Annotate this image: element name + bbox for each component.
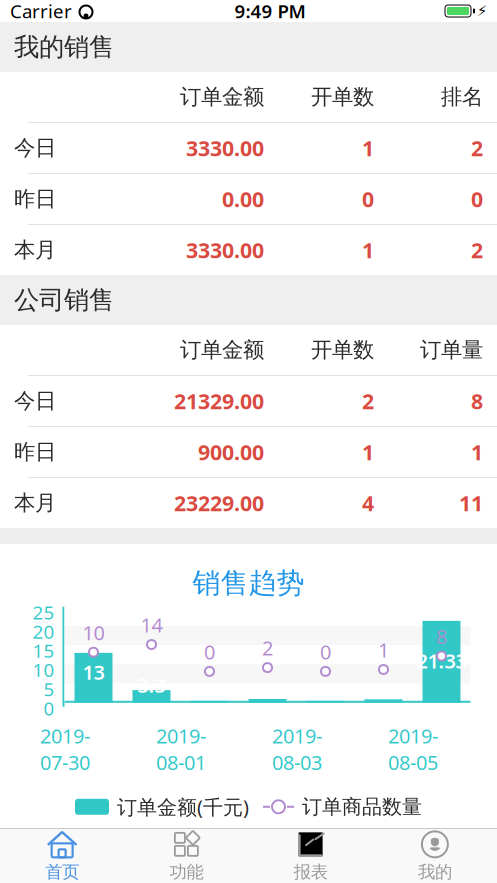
button[interactable]: 首页: [0, 829, 124, 883]
staticText: 今日: [14, 135, 56, 161]
staticText: 9:49 PM: [234, 0, 305, 23]
staticText: Carrier: [10, 0, 72, 23]
staticText: 开单数: [311, 337, 374, 363]
staticText: 8: [471, 387, 483, 415]
button[interactable]: 我的: [373, 829, 497, 883]
staticText: 订单量: [420, 337, 483, 363]
staticText: 1: [362, 438, 374, 466]
staticText: 2: [471, 134, 483, 162]
staticText: 2019-07-30: [40, 722, 90, 775]
staticText: 10: [32, 657, 54, 682]
staticText: 本月: [14, 490, 56, 516]
staticText: 今日: [14, 388, 56, 414]
button[interactable]: 报表: [248, 829, 373, 883]
staticText: 8: [436, 623, 447, 650]
staticText: 11: [459, 489, 483, 517]
staticText: 21329.00: [174, 387, 264, 415]
staticText: 0: [204, 638, 215, 665]
staticText: 21.33: [416, 648, 466, 674]
staticText: 2: [471, 236, 483, 264]
staticText: 3330.00: [186, 134, 264, 162]
staticText: 2019-08-05: [388, 722, 438, 775]
staticText: 1: [378, 636, 389, 663]
staticText: 我的: [418, 861, 452, 883]
staticText: 排名: [441, 84, 483, 110]
staticText: 2019-08-03: [272, 722, 322, 775]
staticText: 0: [43, 696, 54, 721]
staticText: 销售趋势: [192, 566, 304, 600]
staticText: 我的销售: [14, 31, 114, 62]
staticText: 报表: [294, 861, 328, 883]
staticText: 1: [362, 236, 374, 264]
staticText: 0.00: [222, 185, 264, 213]
staticText: 订单金额: [180, 337, 264, 363]
staticText: 3.3: [137, 672, 165, 698]
staticText: 0: [471, 185, 483, 213]
staticText: 20: [32, 619, 54, 644]
staticText: ⚡︎: [477, 3, 487, 19]
staticText: 2019-08-01: [156, 722, 206, 775]
staticText: 功能: [169, 861, 203, 883]
staticText: 4: [362, 489, 374, 517]
button[interactable]: 功能: [124, 829, 248, 883]
staticText: 5: [43, 677, 54, 701]
staticText: 订单金额(千元): [117, 793, 249, 820]
staticText: 1: [471, 438, 483, 466]
staticText: 0: [320, 638, 331, 665]
staticText: 25: [32, 600, 54, 625]
staticText: 最近一月销售订单量占比: [94, 850, 402, 883]
staticText: 首页: [45, 861, 79, 883]
staticText: 900.00: [198, 438, 264, 466]
staticText: 昨日: [14, 439, 56, 465]
staticText: 10: [82, 619, 104, 646]
staticText: 订单金额: [180, 84, 264, 110]
staticText: 2: [262, 634, 273, 661]
staticText: 昨日: [14, 186, 56, 212]
staticText: 13: [82, 659, 104, 685]
staticText: 公司销售: [14, 284, 114, 315]
staticText: 1: [362, 134, 374, 162]
staticText: 本月: [14, 237, 56, 263]
staticText: 14: [140, 611, 162, 638]
staticText: 15: [32, 638, 54, 663]
staticText: 0: [362, 185, 374, 213]
staticText: 23229.00: [174, 489, 264, 517]
staticText: 2: [362, 387, 374, 415]
staticText: 订单商品数量: [302, 794, 422, 819]
staticText: 3330.00: [186, 236, 264, 264]
staticText: 开单数: [311, 84, 374, 110]
